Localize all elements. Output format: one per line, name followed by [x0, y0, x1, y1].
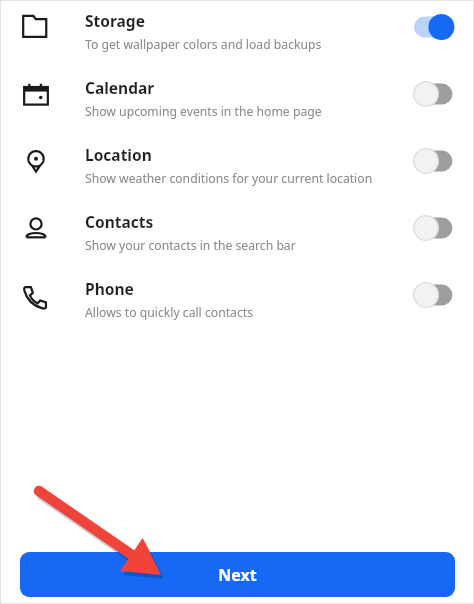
staticText: Next — [218, 564, 257, 586]
button[interactable]: Next — [20, 552, 455, 597]
button[interactable]: Storage on — [414, 14, 462, 40]
staticText: Show upcoming events in the home page — [85, 103, 322, 120]
staticText: To get wallpaper colors and load backups — [85, 36, 322, 53]
button[interactable]: Contacts off — [414, 215, 462, 241]
button[interactable]: Calendar — [0, 77, 474, 120]
button[interactable]: Location off — [414, 148, 462, 174]
staticText: Calendar — [85, 77, 155, 98]
staticText: Location — [85, 144, 152, 165]
staticText: Show weather conditions for your current… — [85, 170, 373, 187]
staticText: Contacts — [85, 211, 154, 232]
button[interactable]: Contacts — [0, 211, 474, 254]
button[interactable]: Phone — [0, 278, 474, 321]
staticText: Phone — [85, 278, 134, 299]
button[interactable]: Calendar off — [414, 81, 462, 107]
button[interactable]: Phone off — [414, 282, 462, 308]
staticText: Allows to quickly call contacts — [85, 304, 254, 321]
staticText: Storage — [85, 10, 145, 31]
button[interactable]: Storage — [0, 10, 474, 53]
staticText: Show your contacts in the search bar — [85, 237, 296, 254]
button[interactable]: Location — [0, 144, 474, 187]
